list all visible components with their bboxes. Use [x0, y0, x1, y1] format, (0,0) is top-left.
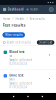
button[interactable]: Search test results [0, 39, 37, 46]
staticText: Sat [9, 54, 12, 58]
staticText: Urine test [9, 74, 23, 77]
staticText: 01/03/2024 [9, 85, 27, 89]
staticText: Download [39, 41, 53, 44]
staticText: Filter results [5, 33, 22, 37]
button[interactable]: Filter results [2, 32, 25, 38]
staticText: Home / Health / Test results [3, 17, 45, 21]
staticText: Sample collected [9, 82, 32, 85]
staticText: Mon [9, 78, 15, 81]
button[interactable]: Dashboard [8, 8, 24, 11]
staticText: 02/03/2024 [9, 62, 27, 65]
staticText: Health [29, 8, 38, 11]
staticText: Search test results [7, 41, 31, 44]
button[interactable]: Download [37, 40, 54, 45]
staticText: Blood test [9, 50, 24, 54]
button[interactable]: Blood test [0, 46, 56, 69]
button[interactable]: Menu [0, 8, 8, 11]
staticText: Test results [3, 22, 26, 28]
button[interactable]: Account [49, 7, 56, 12]
button[interactable]: Urine test [0, 69, 56, 93]
button[interactable]: Health [24, 8, 38, 11]
staticText: Dashboard [8, 8, 24, 11]
staticText: Sample collected [9, 58, 32, 62]
